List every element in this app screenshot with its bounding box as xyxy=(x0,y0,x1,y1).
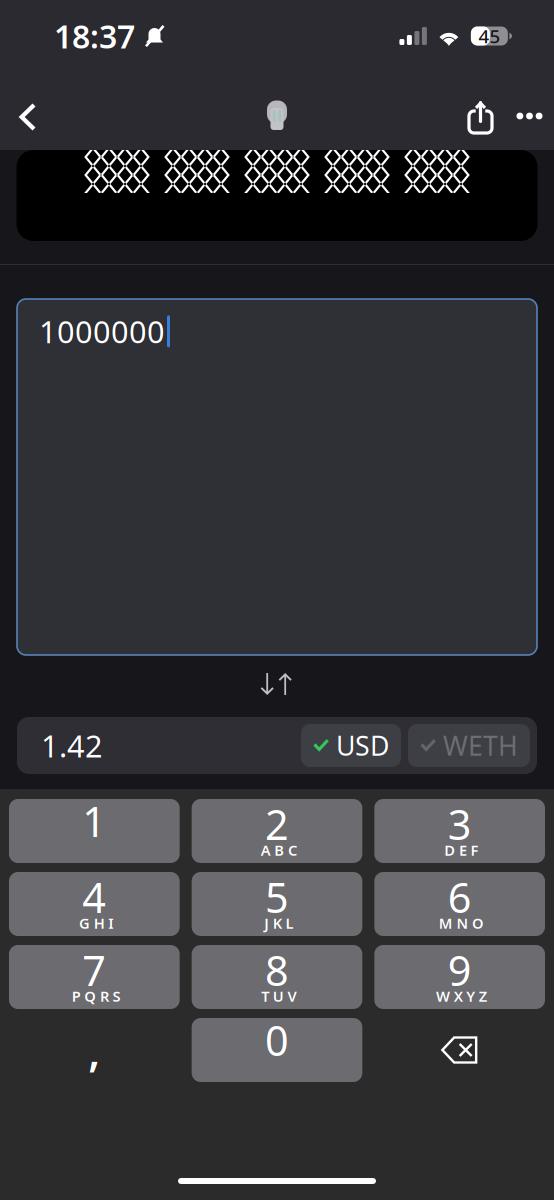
staticText: USD xyxy=(336,728,389,763)
staticText: 4 xyxy=(82,870,106,924)
staticText: 1000000 xyxy=(39,311,165,352)
staticText: JKL xyxy=(264,913,293,933)
staticText: GHI xyxy=(79,913,113,933)
button[interactable]: WETH xyxy=(408,724,530,767)
button[interactable]: 5 xyxy=(192,872,362,936)
button[interactable]: , xyxy=(9,1018,180,1082)
staticText: PQRS xyxy=(72,986,120,1006)
staticText: MNO xyxy=(439,913,484,933)
button[interactable]: 1 xyxy=(9,799,180,863)
button[interactable]: 4 xyxy=(9,872,180,936)
staticText: 7 xyxy=(82,943,106,997)
staticText: TUV xyxy=(261,986,296,1006)
button[interactable]: 7 xyxy=(9,945,180,1009)
button[interactable]: Back xyxy=(6,81,48,140)
staticText: WETH xyxy=(443,728,518,763)
button[interactable]: 3 xyxy=(374,799,545,863)
button[interactable]: USD xyxy=(301,724,401,767)
button[interactable]: Swap currencies xyxy=(242,667,312,701)
staticText: 18:37 xyxy=(54,15,135,57)
staticText: 1.42 xyxy=(41,725,103,766)
button[interactable]: More xyxy=(505,81,554,141)
staticText: 9 xyxy=(448,943,472,997)
staticText: WXYZ xyxy=(436,986,487,1006)
staticText: 8 xyxy=(265,943,289,997)
button[interactable]: 8 xyxy=(192,945,362,1009)
button[interactable]: 0 xyxy=(192,1018,362,1082)
staticText: 1 xyxy=(82,794,106,848)
staticText: ABC xyxy=(261,840,297,860)
staticText: , xyxy=(88,1022,100,1078)
staticText: 0 xyxy=(265,1013,289,1067)
button[interactable]: Share xyxy=(456,82,505,140)
button[interactable]: 6 xyxy=(374,872,545,936)
staticText: DEF xyxy=(444,840,479,860)
button[interactable]: 1000000 xyxy=(17,299,537,655)
staticText: 6 xyxy=(448,870,472,924)
button[interactable]: 9 xyxy=(374,945,545,1009)
staticText: 45 xyxy=(478,24,500,48)
staticText: 3 xyxy=(448,797,472,851)
staticText: 2 xyxy=(265,797,289,851)
button[interactable]: 2 xyxy=(192,799,362,863)
button[interactable]: Delete xyxy=(374,1018,545,1082)
staticText: 5 xyxy=(265,870,289,924)
